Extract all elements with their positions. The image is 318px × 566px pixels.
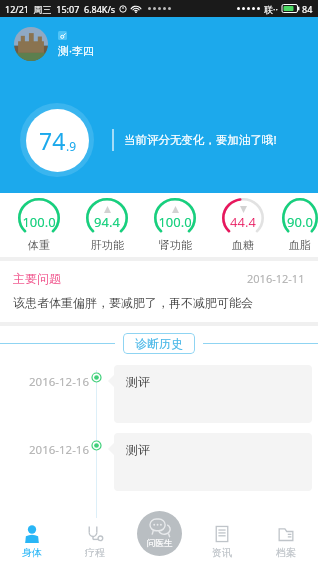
button[interactable]: 问医生 bbox=[137, 511, 182, 556]
staticText: 体重 bbox=[28, 238, 50, 252]
staticText: 资讯 bbox=[212, 546, 232, 559]
button[interactable]: 诊断历史 bbox=[135, 336, 183, 351]
staticText: 测·李四 bbox=[58, 43, 94, 58]
button[interactable]: 疗程 bbox=[63, 518, 126, 566]
staticText: 该患者体重偏胖，要减肥了，再不减肥可能会 bbox=[13, 295, 253, 310]
button[interactable]: 身体 bbox=[0, 518, 63, 566]
button[interactable]: 100.0 bbox=[146, 198, 204, 252]
staticText: 身体 bbox=[22, 546, 42, 559]
staticText: 疗程 bbox=[85, 546, 105, 559]
button[interactable]: 2016-12-16 bbox=[0, 365, 318, 423]
staticText: 74 bbox=[39, 125, 66, 156]
button[interactable]: 90.0 bbox=[282, 198, 318, 252]
staticText: 当前评分无变化，要加油了哦! bbox=[124, 132, 277, 148]
staticText: 血糖 bbox=[232, 238, 254, 252]
staticText: 100.0 bbox=[22, 213, 56, 231]
staticText: 100.0 bbox=[158, 213, 192, 231]
staticText: 肝功能 bbox=[91, 238, 124, 252]
staticText: 90.0 bbox=[287, 213, 313, 231]
button[interactable]: 资讯 bbox=[190, 518, 254, 566]
staticText: 问医生 bbox=[147, 538, 173, 549]
staticText: 档案 bbox=[276, 546, 296, 559]
staticText: 联·· bbox=[264, 3, 278, 15]
button[interactable]: 44.4 bbox=[214, 198, 272, 252]
staticText: 测评 bbox=[126, 442, 150, 457]
staticText: 12/21 周三 15:07 6.84K/s bbox=[5, 3, 116, 15]
staticText: 诊断历史 bbox=[135, 336, 183, 351]
staticText: 血脂 bbox=[289, 238, 311, 252]
staticText: 94.4 bbox=[94, 213, 120, 231]
button[interactable]: 94.4 bbox=[78, 198, 136, 252]
staticText: 84 bbox=[302, 3, 313, 15]
button[interactable]: 100.0 bbox=[10, 198, 68, 252]
staticText: .9 bbox=[66, 138, 77, 154]
staticText: 2016-12-16 bbox=[29, 374, 90, 390]
staticText: 肾功能 bbox=[159, 238, 192, 252]
staticText: 2016-12-11 bbox=[247, 271, 305, 286]
button[interactable]: 2016-12-16 bbox=[0, 433, 318, 491]
staticText: 主要问题 bbox=[13, 271, 61, 286]
staticText: 测评 bbox=[126, 374, 150, 389]
button[interactable]: 档案 bbox=[254, 518, 318, 566]
staticText: 2016-12-16 bbox=[29, 442, 90, 458]
staticText: 44.4 bbox=[230, 213, 256, 231]
